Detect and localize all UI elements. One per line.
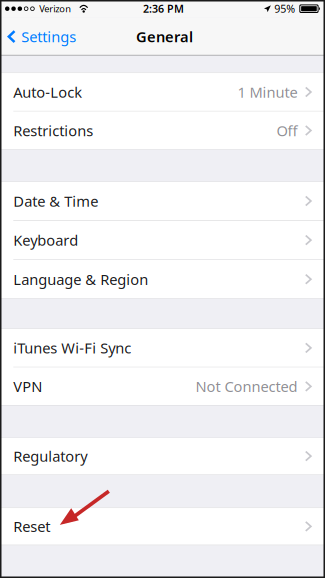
staticText: General [136,27,193,46]
button[interactable]: Settings [0,18,84,55]
staticText: Auto-Lock [13,82,82,102]
staticText: Keyboard [13,230,78,250]
staticText: VPN [13,377,42,396]
staticText: Verizon [39,2,71,15]
staticText: Reset [13,517,50,536]
button[interactable]: Reset [0,508,325,545]
button[interactable]: iTunes Wi-Fi Sync [0,329,325,367]
button[interactable]: Restrictions [0,112,325,149]
staticText: 1 Minute [237,82,297,102]
button[interactable]: Auto-Lock [0,73,325,111]
staticText: Language & Region [13,269,148,289]
staticText: Settings [21,27,76,46]
staticText: Restrictions [13,121,93,140]
button[interactable]: Regulatory [0,438,325,474]
staticText: iTunes Wi-Fi Sync [13,338,131,358]
button[interactable]: Date & Time [0,182,325,220]
button[interactable]: VPN [0,368,325,405]
staticText: Not Connected [195,377,297,396]
staticText: 95% [274,2,295,16]
staticText: Date & Time [13,191,98,211]
button[interactable]: Keyboard [0,221,325,259]
staticText: 2:36 PM [143,2,184,16]
staticText: Off [276,121,297,140]
staticText: Regulatory [13,446,87,466]
button[interactable]: Language & Region [0,260,325,298]
